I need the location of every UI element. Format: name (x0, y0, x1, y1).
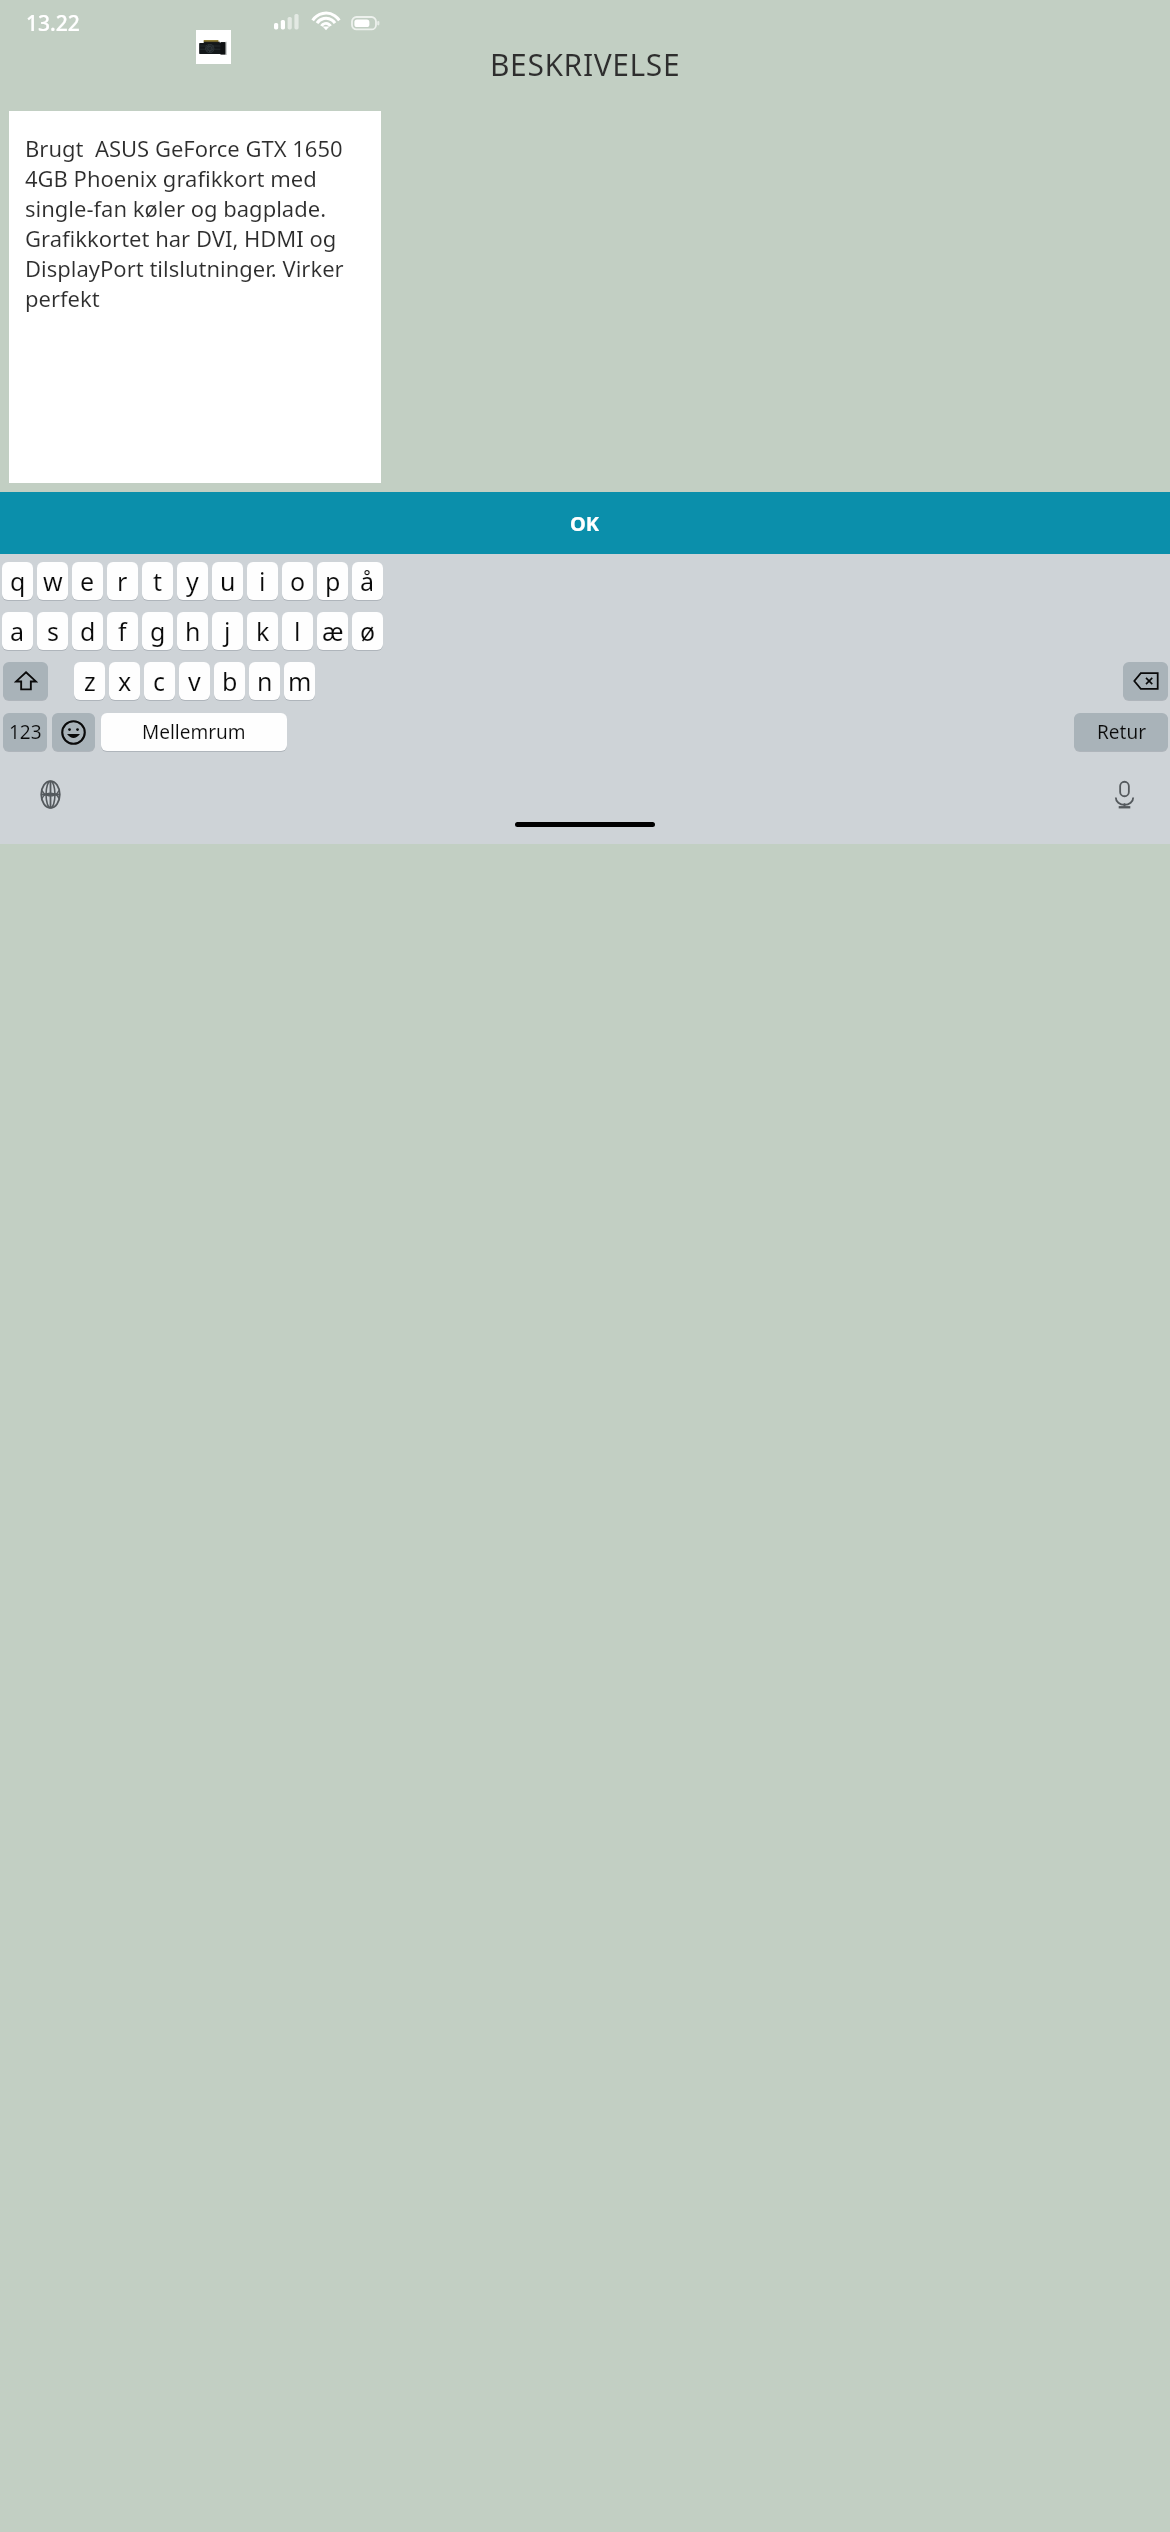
staticText: v (188, 664, 201, 698)
staticText: t (153, 564, 163, 598)
staticText: i (259, 564, 266, 598)
button[interactable]: Slet baglæns (1123, 662, 1168, 700)
staticText: OK (570, 510, 600, 537)
button[interactable]: d (72, 612, 103, 650)
button[interactable]: f (107, 612, 138, 650)
staticText: l (294, 614, 301, 648)
staticText: æ (322, 614, 344, 648)
button[interactable]: Mellemrum (101, 713, 287, 751)
staticText: BESKRIVELSE (490, 44, 681, 85)
button[interactable]: Skift sprog (32, 776, 68, 812)
staticText: n (257, 664, 273, 698)
button[interactable]: q (2, 562, 33, 600)
button[interactable]: Brugt ASUS GeForce GTX 1650 4GB Phoenix … (9, 111, 381, 483)
staticText: u (220, 564, 236, 598)
button[interactable]: r (107, 562, 138, 600)
button[interactable]: Diktering (1106, 776, 1142, 812)
button[interactable]: Skift (3, 662, 48, 700)
staticText: q (10, 564, 26, 598)
button[interactable]: Produktbillede (196, 30, 231, 64)
button[interactable]: o (282, 562, 313, 600)
button[interactable]: Emoji (52, 713, 95, 751)
staticText: x (118, 664, 132, 698)
button[interactable]: c (144, 662, 175, 700)
button[interactable]: p (317, 562, 348, 600)
button[interactable]: w (37, 562, 68, 600)
button[interactable]: ø (352, 612, 383, 650)
staticText: 123 (9, 719, 42, 745)
button[interactable]: i (247, 562, 278, 600)
button[interactable]: a (2, 612, 33, 650)
staticText: m (288, 664, 312, 698)
button[interactable]: l (282, 612, 313, 650)
button[interactable]: n (249, 662, 280, 700)
staticText: z (84, 664, 96, 698)
button[interactable]: s (37, 612, 68, 650)
staticText: Retur (1097, 719, 1146, 745)
button[interactable]: u (212, 562, 243, 600)
button[interactable]: g (142, 612, 173, 650)
button[interactable]: h (177, 612, 208, 650)
button[interactable]: æ (317, 612, 348, 650)
button[interactable]: k (247, 612, 278, 650)
button[interactable]: Tal og symboler (3, 713, 47, 751)
staticText: Brugt ASUS GeForce GTX 1650 4GB Phoenix … (25, 133, 367, 313)
staticText: p (325, 564, 341, 598)
button[interactable]: j (212, 612, 243, 650)
staticText: s (47, 614, 59, 648)
staticText: o (290, 564, 306, 598)
staticText: f (118, 614, 127, 648)
staticText: Mellemrum (142, 719, 246, 745)
button[interactable]: e (72, 562, 103, 600)
button[interactable]: v (179, 662, 210, 700)
staticText: g (150, 614, 166, 648)
button[interactable]: m (284, 662, 315, 700)
staticText: a (10, 614, 25, 648)
staticText: w (43, 564, 63, 598)
staticText: d (80, 614, 96, 648)
button[interactable]: b (214, 662, 245, 700)
staticText: b (222, 664, 238, 698)
button[interactable]: y (177, 562, 208, 600)
staticText: 13.22 (26, 9, 80, 38)
button[interactable]: OK (0, 492, 1170, 554)
staticText: c (153, 664, 166, 698)
staticText: ø (360, 614, 376, 648)
button[interactable]: å (352, 562, 383, 600)
button[interactable]: Retur (1074, 713, 1168, 751)
staticText: h (185, 614, 201, 648)
staticText: å (360, 564, 375, 598)
button[interactable]: x (109, 662, 140, 700)
staticText: r (117, 564, 128, 598)
button[interactable]: z (74, 662, 105, 700)
staticText: y (186, 564, 199, 598)
staticText: k (256, 614, 270, 648)
staticText: j (224, 614, 231, 648)
button[interactable]: t (142, 562, 173, 600)
staticText: e (80, 564, 95, 598)
